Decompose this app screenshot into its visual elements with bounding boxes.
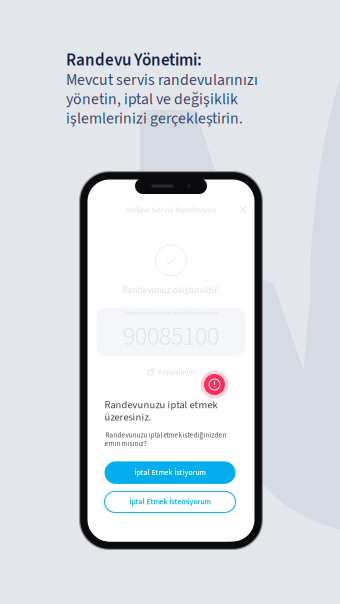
staticText: Mevcut servis randevularınızı <box>66 69 258 91</box>
staticText: yönetin, iptal ve değişiklik <box>66 88 238 111</box>
staticText: Kopyalayın <box>157 366 194 378</box>
staticText: İptal Etmek İstiyorum <box>134 467 205 478</box>
staticText: Randevu Yönetimi: <box>66 48 202 72</box>
staticText: 90085100 <box>123 318 219 355</box>
staticText: Randevunuzu iptal etmek <box>104 397 217 412</box>
button[interactable]: İptal Etmek İstiyorum <box>104 461 235 484</box>
staticText: Randevunuz oluşturuldu! <box>122 284 219 297</box>
staticText: işlemlerinizi gerçekleştirin. <box>66 107 243 130</box>
staticText: İptal Etmek İstemiyorum <box>129 496 210 507</box>
staticText: Online Servis Randevusu <box>125 203 216 216</box>
staticText: üzeresiniz. <box>104 410 151 425</box>
staticText: emin misiniz? <box>104 439 146 449</box>
staticText: Randevunuzu iptal etmek istediğinizden <box>104 430 226 440</box>
staticText: Randevu numaranız aşağıda yer alıyor <box>123 309 218 317</box>
button[interactable]: İptal Etmek İstemiyorum <box>104 491 235 512</box>
